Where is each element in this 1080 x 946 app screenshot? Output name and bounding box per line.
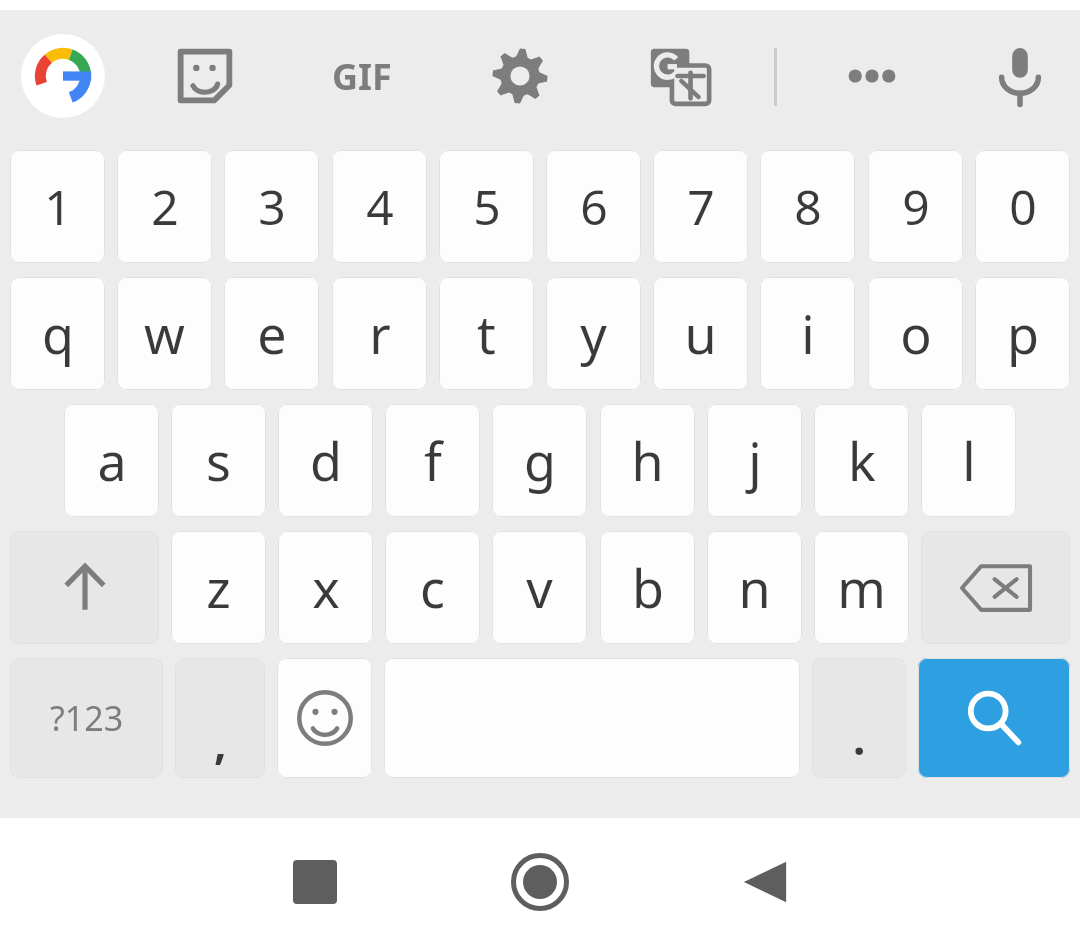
staticText: e (257, 298, 287, 369)
button[interactable]: w (117, 277, 212, 390)
staticText: y (580, 298, 607, 369)
button[interactable]: k (814, 404, 909, 517)
button[interactable]: b (600, 531, 695, 644)
staticText: d (310, 425, 342, 496)
button[interactable]: GIF (307, 33, 417, 119)
button[interactable]: z (171, 531, 266, 644)
staticText: v (526, 552, 553, 623)
button[interactable]: v (492, 531, 587, 644)
button[interactable]: Back (690, 818, 840, 946)
button[interactable]: d (278, 404, 373, 517)
button[interactable]: p (975, 277, 1070, 390)
staticText: x (312, 552, 340, 623)
button[interactable]: Search (918, 658, 1070, 778)
staticText: h (631, 425, 664, 496)
button[interactable]: m (814, 531, 909, 644)
staticText: , (214, 712, 227, 772)
staticText: f (424, 425, 442, 496)
button[interactable]: 1 (10, 150, 105, 263)
button[interactable]: n (707, 531, 802, 644)
button[interactable]: Space (384, 658, 800, 778)
staticText: . (853, 708, 866, 768)
button[interactable]: Settings (465, 33, 575, 119)
staticText: i (801, 298, 815, 369)
button[interactable]: 4 (332, 150, 427, 263)
button[interactable]: j (707, 404, 802, 517)
staticText: 5 (473, 174, 501, 239)
staticText: r (369, 298, 391, 369)
button[interactable]: 9 (868, 150, 963, 263)
button[interactable]: Translate (625, 33, 735, 119)
staticText: z (206, 552, 231, 623)
button[interactable]: Emoji (277, 658, 372, 778)
button[interactable]: x (278, 531, 373, 644)
staticText: GIF (332, 52, 392, 101)
button[interactable]: ?123 (10, 658, 163, 778)
button[interactable]: 5 (439, 150, 534, 263)
button[interactable]: q (10, 277, 105, 390)
staticText: 0 (1009, 174, 1037, 239)
button[interactable]: 3 (224, 150, 319, 263)
button[interactable]: 2 (117, 150, 212, 263)
staticText: 3 (258, 174, 286, 239)
staticText: a (97, 425, 127, 496)
staticText: 7 (687, 174, 715, 239)
button[interactable]: 6 (546, 150, 641, 263)
button[interactable]: h (600, 404, 695, 517)
button[interactable]: 8 (760, 150, 855, 263)
staticText: 8 (794, 174, 822, 239)
staticText: l (962, 425, 976, 496)
staticText: ?123 (50, 695, 124, 741)
staticText: g (524, 425, 556, 496)
button[interactable]: More options (817, 33, 927, 119)
button[interactable]: s (171, 404, 266, 517)
staticText: t (477, 298, 496, 369)
staticText: q (42, 298, 74, 369)
staticText: 2 (151, 174, 179, 239)
button[interactable]: i (760, 277, 855, 390)
button[interactable]: t (439, 277, 534, 390)
staticText: w (144, 298, 185, 369)
staticText: 4 (366, 174, 394, 239)
button[interactable]: Home (465, 818, 615, 946)
staticText: k (848, 425, 876, 496)
button[interactable]: g (492, 404, 587, 517)
staticText: u (684, 298, 717, 369)
staticText: 6 (580, 174, 608, 239)
staticText: n (738, 552, 771, 623)
button[interactable]: r (332, 277, 427, 390)
button[interactable]: . (812, 658, 906, 778)
button[interactable]: o (868, 277, 963, 390)
staticText: s (206, 425, 231, 496)
button[interactable]: c (385, 531, 480, 644)
button[interactable]: y (546, 277, 641, 390)
staticText: p (1007, 298, 1039, 369)
button[interactable]: 0 (975, 150, 1070, 263)
button[interactable]: , (175, 658, 265, 778)
staticText: 1 (44, 174, 72, 239)
staticText: b (632, 552, 664, 623)
button[interactable]: Shift (10, 531, 159, 644)
staticText: 9 (902, 174, 930, 239)
button[interactable]: 7 (653, 150, 748, 263)
button[interactable]: Google search (8, 33, 118, 119)
button[interactable]: e (224, 277, 319, 390)
button[interactable]: Backspace (921, 531, 1070, 644)
button[interactable]: Voice input (970, 33, 1070, 119)
button[interactable]: Recent apps (240, 818, 390, 946)
staticText: c (420, 552, 445, 623)
staticText: o (900, 298, 932, 369)
staticText: j (748, 425, 762, 496)
button[interactable]: u (653, 277, 748, 390)
button[interactable]: Stickers (150, 33, 260, 119)
staticText: m (837, 552, 886, 623)
button[interactable]: l (921, 404, 1016, 517)
button[interactable]: a (64, 404, 159, 517)
button[interactable]: f (385, 404, 480, 517)
